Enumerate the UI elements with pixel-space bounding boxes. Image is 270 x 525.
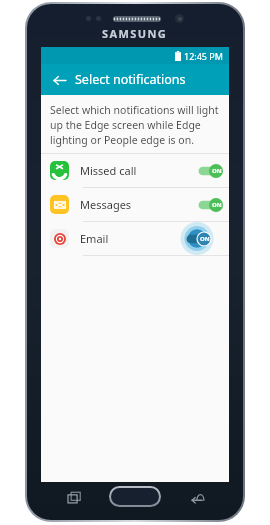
button[interactable]: Toggle	[196, 164, 223, 178]
staticText: ON	[200, 235, 210, 243]
staticText: Select which notifications will light up…	[50, 103, 220, 147]
staticText: Select notifications	[75, 71, 186, 88]
button[interactable]: Toggle	[196, 198, 223, 212]
staticText: Missed call	[80, 163, 137, 178]
staticText: ON	[212, 201, 222, 209]
staticText: ON	[212, 167, 222, 175]
button[interactable]: Missed call	[41, 154, 229, 187]
button[interactable]: Toggle	[184, 232, 211, 246]
staticText: 12:45 PM	[184, 50, 223, 62]
button[interactable]: Back	[47, 68, 71, 92]
button[interactable]: Home	[109, 486, 161, 507]
staticText: Messages	[80, 197, 132, 212]
button[interactable]: Back	[187, 487, 209, 509]
staticText: Email	[80, 231, 109, 246]
staticText: SAMSUNG	[102, 26, 168, 41]
button[interactable]: Email	[41, 222, 229, 255]
button[interactable]: Recents	[63, 487, 85, 509]
button[interactable]: Messages	[41, 188, 229, 221]
